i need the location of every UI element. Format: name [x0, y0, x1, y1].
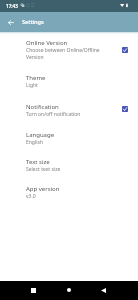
staticText: Settings: [22, 18, 44, 26]
staticText: Theme: [26, 74, 46, 82]
button[interactable]: Notification: [0, 100, 138, 128]
staticText: Turn on/off notification: [26, 111, 81, 118]
button[interactable]: Notification: [122, 106, 128, 112]
staticText: 17:43: [6, 3, 18, 9]
button[interactable]: Online Version: [0, 36, 138, 71]
button[interactable]: Theme: [0, 71, 138, 100]
button[interactable]: Online Version: [122, 47, 128, 53]
staticText: English: [26, 139, 44, 146]
staticText: App version: [26, 185, 60, 193]
button[interactable]: Back: [5, 16, 17, 28]
button[interactable]: App version: [0, 182, 138, 210]
staticText: Language: [26, 131, 55, 139]
staticText: Choose between Online/Offline Version: [26, 47, 100, 60]
staticText: Light: [26, 82, 38, 89]
staticText: Notification: [26, 103, 59, 111]
staticText: Select text size: [26, 166, 61, 173]
button[interactable]: Language: [0, 128, 138, 155]
button[interactable]: Home: [60, 281, 78, 299]
button[interactable]: Recents: [24, 281, 42, 299]
staticText: v3.0: [26, 193, 36, 200]
staticText: Online Version: [26, 39, 68, 47]
staticText: Text size: [26, 158, 50, 166]
button[interactable]: Text size: [0, 155, 138, 182]
button[interactable]: Back: [94, 281, 112, 299]
